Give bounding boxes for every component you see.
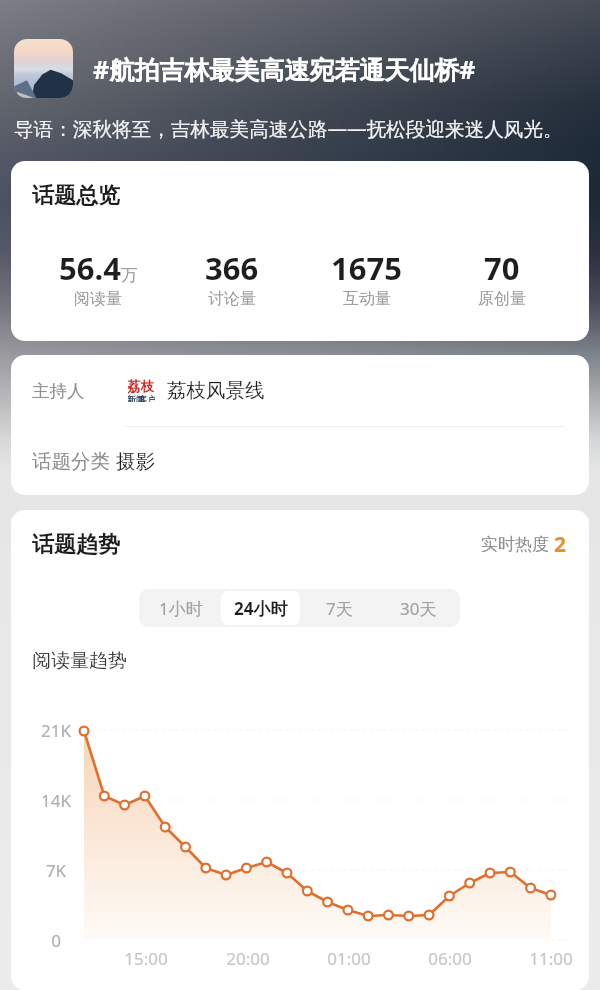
staticText: 1小时 bbox=[159, 597, 203, 620]
staticText: 56.4 bbox=[59, 247, 121, 289]
button[interactable]: 7天 bbox=[300, 591, 379, 625]
staticText: 7天 bbox=[326, 597, 353, 620]
button[interactable]: Topic cover photo bbox=[14, 39, 73, 98]
button[interactable]: 主持人 bbox=[11, 355, 589, 426]
button[interactable]: 实时热度 bbox=[481, 530, 567, 559]
staticText: 70 bbox=[484, 247, 520, 289]
staticText: 话题趋势 bbox=[32, 531, 120, 559]
button[interactable]: 1675 bbox=[299, 247, 434, 309]
staticText: 主持人 bbox=[32, 380, 85, 402]
staticText: 摄影 bbox=[116, 449, 155, 474]
staticText: 14K bbox=[26, 789, 86, 812]
staticText: 原创量 bbox=[478, 289, 526, 309]
staticText: 阅读量趋势 bbox=[32, 649, 127, 673]
staticText: 荔枝风景线 bbox=[167, 378, 265, 403]
button[interactable]: 话题分类 bbox=[11, 427, 589, 495]
button[interactable]: 30天 bbox=[379, 591, 458, 625]
button[interactable]: 24小时 bbox=[221, 591, 300, 625]
staticText: 实时热度 bbox=[481, 534, 549, 555]
staticText: 01:00 bbox=[309, 947, 389, 970]
staticText: 06:00 bbox=[410, 947, 490, 970]
button[interactable]: 366 bbox=[165, 247, 299, 309]
staticText: 11:00 bbox=[511, 947, 589, 970]
staticText: 21K bbox=[26, 719, 86, 742]
staticText: 7K bbox=[26, 859, 86, 882]
staticText: 万 bbox=[121, 265, 138, 286]
button[interactable]: 70 bbox=[434, 247, 569, 309]
staticText: 2 bbox=[554, 530, 567, 559]
staticText: 新闻 bbox=[128, 394, 145, 402]
staticText: 24小时 bbox=[234, 597, 288, 620]
staticText: 话题总览 bbox=[32, 182, 120, 210]
staticText: 0 bbox=[26, 929, 86, 952]
staticText: 互动量 bbox=[343, 289, 391, 309]
staticText: 阅读量 bbox=[74, 289, 122, 309]
staticText: 话题分类 bbox=[32, 449, 110, 474]
staticText: #航拍吉林最美高速宛若通天仙桥# bbox=[93, 52, 476, 86]
staticText: 366 bbox=[205, 247, 259, 289]
button[interactable]: 1小时 bbox=[141, 591, 221, 625]
staticText: 客户 bbox=[138, 394, 155, 402]
staticText: 30天 bbox=[400, 597, 437, 620]
staticText: 20:00 bbox=[208, 947, 288, 970]
button[interactable]: 56.4 bbox=[31, 247, 165, 309]
staticText: 荔枝 bbox=[128, 379, 154, 395]
staticText: 讨论量 bbox=[208, 289, 256, 309]
staticText: 1675 bbox=[331, 247, 402, 289]
staticText: 导语：深秋将至，吉林最美高速公路——抚松段迎来迷人风光。 bbox=[14, 115, 563, 142]
staticText: 15:00 bbox=[106, 947, 186, 970]
